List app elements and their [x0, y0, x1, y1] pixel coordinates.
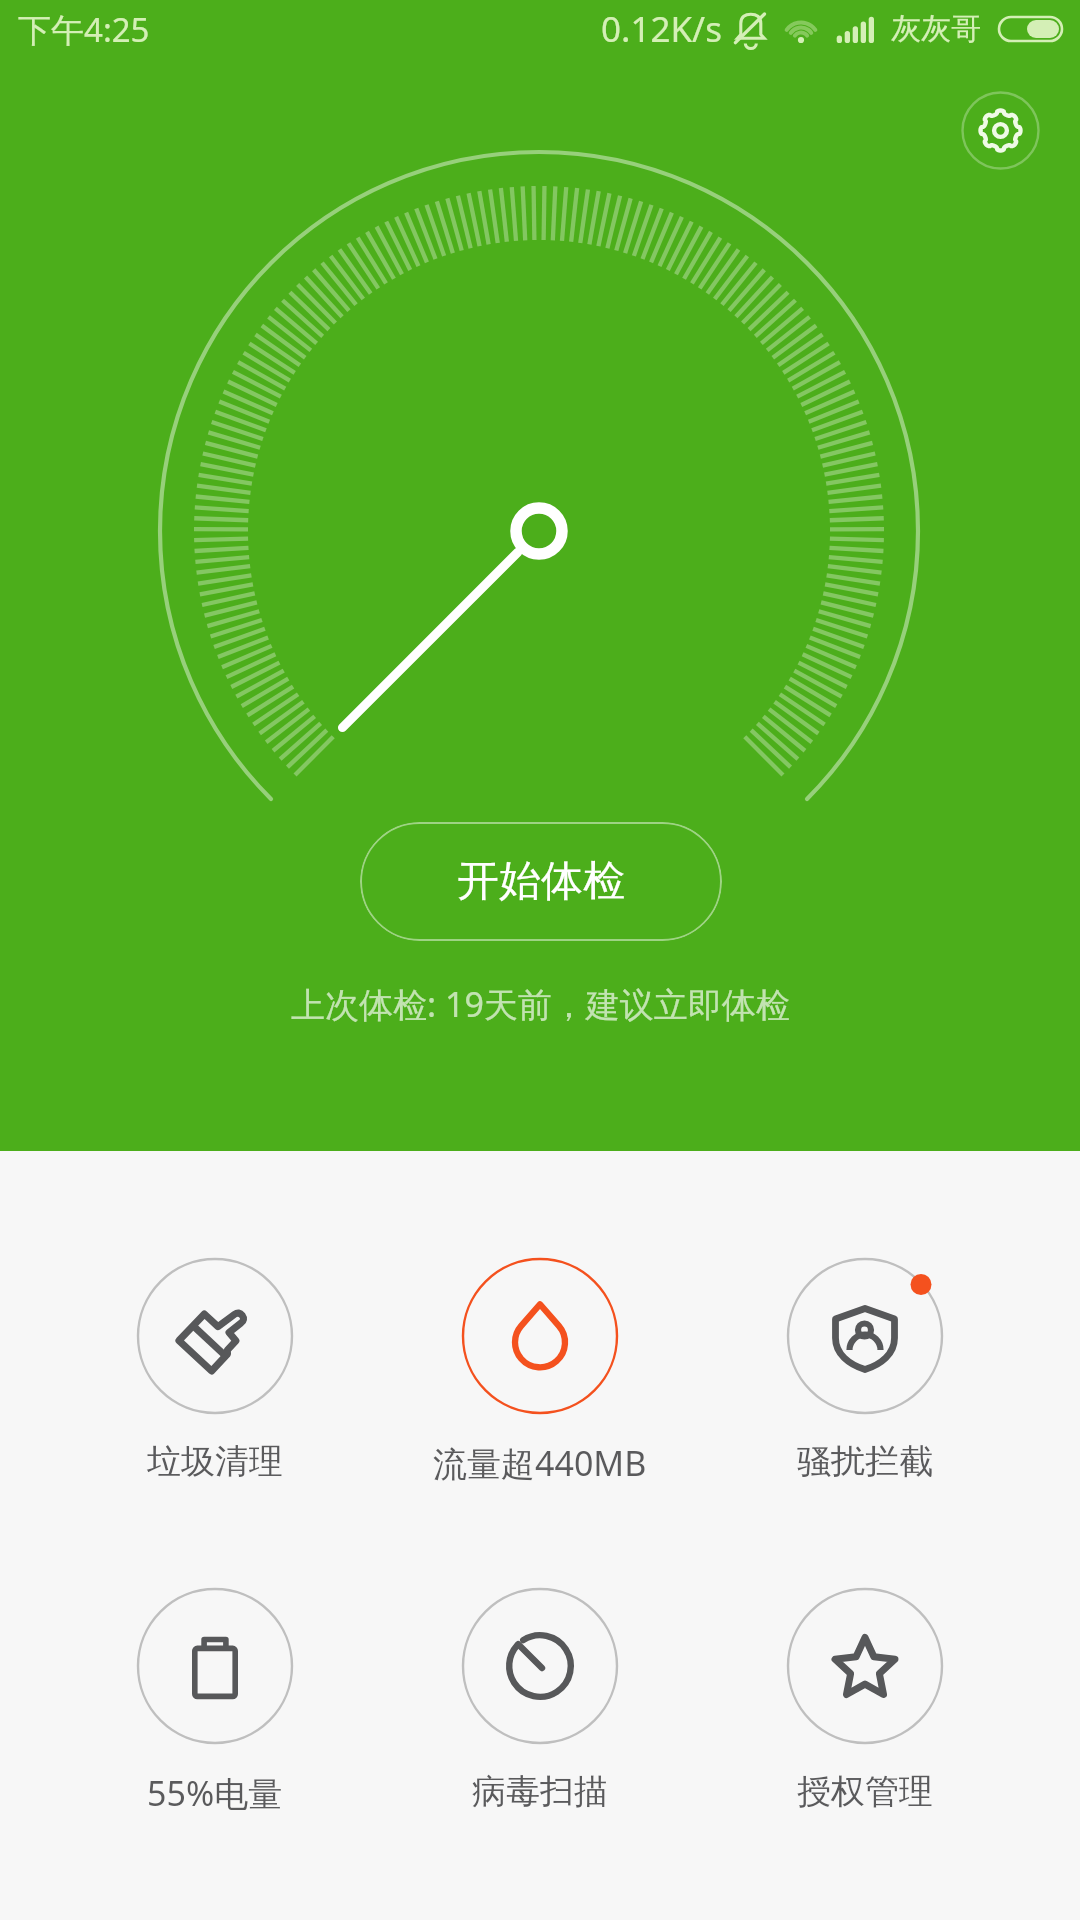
button[interactable]: 开始体检	[360, 822, 722, 941]
button[interactable]: Settings	[960, 90, 1041, 171]
staticText: 下午4:25	[18, 7, 150, 52]
button[interactable]: Junk cleanup	[53, 1246, 377, 1496]
button[interactable]: Data usage	[378, 1246, 702, 1496]
staticText: 病毒扫描	[472, 1770, 608, 1813]
staticText: 垃圾清理	[147, 1440, 283, 1483]
button[interactable]: Virus scan	[378, 1576, 702, 1826]
staticText: 上次体检: 19天前，建议立即体检	[291, 981, 790, 1027]
staticText: 灰灰哥	[891, 10, 981, 48]
staticText: 55%电量	[147, 1770, 283, 1816]
button[interactable]: Battery	[53, 1576, 377, 1826]
staticText: 骚扰拦截	[797, 1440, 933, 1483]
staticText: 0.12K/s	[601, 5, 722, 53]
staticText: 开始体检	[457, 855, 625, 908]
staticText: 流量超440MB	[433, 1440, 647, 1486]
button[interactable]: Blocklist	[703, 1246, 1027, 1496]
button[interactable]: Permissions	[703, 1576, 1027, 1826]
staticText: 授权管理	[797, 1770, 933, 1813]
